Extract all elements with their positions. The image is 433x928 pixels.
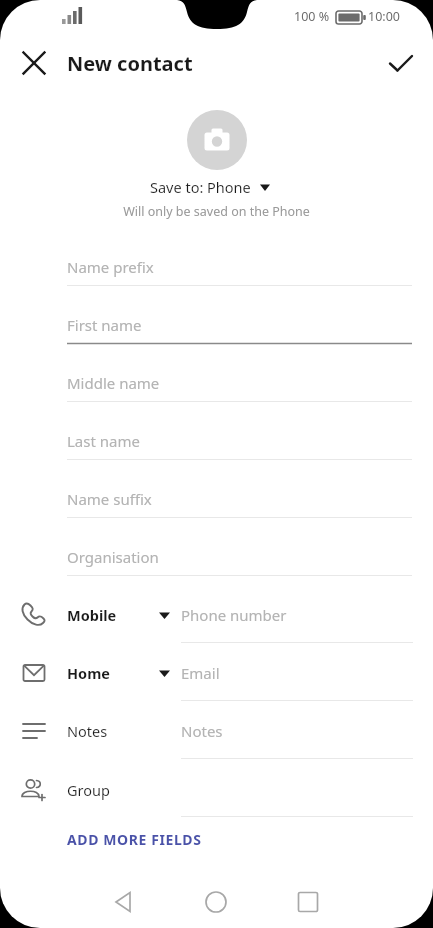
button[interactable]: Recent apps [286,880,330,924]
staticText: Mobile [67,605,117,625]
button[interactable]: Home [194,880,238,924]
button[interactable]: Name suffix [67,479,412,517]
button[interactable]: Organisation [67,537,412,575]
staticText: First name [67,315,142,335]
staticText: Notes [181,721,223,741]
staticText: Organisation [67,547,159,567]
button[interactable]: Back [102,880,146,924]
staticText: Middle name [67,373,160,393]
staticText: Last name [67,431,140,451]
staticText: Notes [67,721,108,741]
button[interactable]: First name [67,305,412,343]
button[interactable]: Name prefix [67,247,412,285]
button[interactable]: Middle name [67,363,412,401]
button[interactable]: Notes [0,704,433,758]
staticText: New contact [67,50,193,77]
staticText: Name suffix [67,489,152,509]
staticText: 100 % [294,8,330,25]
button[interactable]: Mobile [0,588,433,642]
button[interactable]: Close [13,42,55,84]
staticText: Will only be saved on the Phone [123,203,310,220]
staticText: ADD MORE FIELDS [67,830,202,849]
staticText: Home [67,663,110,683]
staticText: Email [181,663,220,683]
staticText: 10:00 [368,8,400,25]
button[interactable]: Last name [67,421,412,459]
button[interactable]: Save [380,42,422,84]
button[interactable]: Add photo [187,110,247,170]
button[interactable]: Group [0,763,433,817]
button[interactable]: Home [0,646,433,700]
button[interactable]: ADD MORE FIELDS [67,830,202,849]
staticText: Save to: Phone [150,177,251,197]
button[interactable]: Save to: Phone [150,177,270,197]
staticText: Phone number [181,605,287,625]
staticText: Group [67,780,110,800]
staticText: Name prefix [67,257,154,277]
